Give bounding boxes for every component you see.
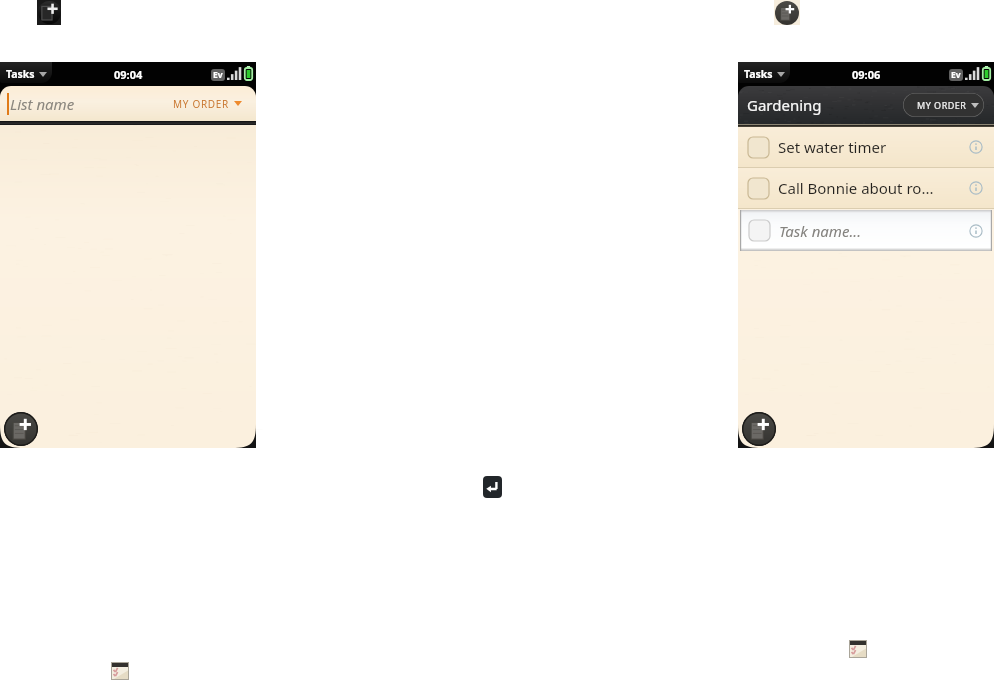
button[interactable]: New task — [775, 1, 799, 25]
staticText: Ev — [213, 69, 223, 81]
staticText: MY ORDER — [917, 99, 967, 111]
button[interactable]: MY ORDER — [903, 93, 984, 117]
staticText: 09:06 — [852, 67, 881, 82]
button[interactable]: Tasks app — [111, 662, 129, 680]
button[interactable]: Tasks — [0, 62, 52, 83]
staticText: Ev — [951, 69, 961, 81]
button[interactable]: Set water timer — [738, 127, 994, 167]
staticText: Call Bonnie about ro... — [778, 178, 934, 198]
button[interactable]: Task details — [969, 140, 983, 154]
button[interactable]: List name — [0, 86, 256, 121]
button[interactable]: New list — [37, 0, 61, 25]
button[interactable]: MY ORDER — [173, 86, 242, 121]
staticText: Set water timer — [778, 137, 887, 157]
button[interactable]: Enter — [483, 476, 502, 498]
staticText: Tasks — [6, 67, 35, 81]
button[interactable]: New task — [4, 412, 38, 446]
staticText: Task name... — [779, 221, 861, 241]
button[interactable]: New task — [742, 412, 776, 446]
button[interactable]: Tasks app — [849, 640, 867, 658]
button[interactable]: Task name... — [740, 210, 992, 251]
staticText: MY ORDER — [173, 97, 230, 111]
staticText: 09:04 — [114, 67, 143, 82]
button[interactable]: Task details — [969, 181, 983, 195]
staticText: List name — [10, 94, 75, 114]
staticText: Tasks — [744, 67, 773, 81]
button[interactable]: Tasks — [738, 62, 790, 83]
button[interactable]: Call Bonnie about ro... — [738, 168, 994, 208]
staticText: Gardening — [747, 95, 822, 115]
button[interactable]: Task details — [969, 224, 983, 238]
